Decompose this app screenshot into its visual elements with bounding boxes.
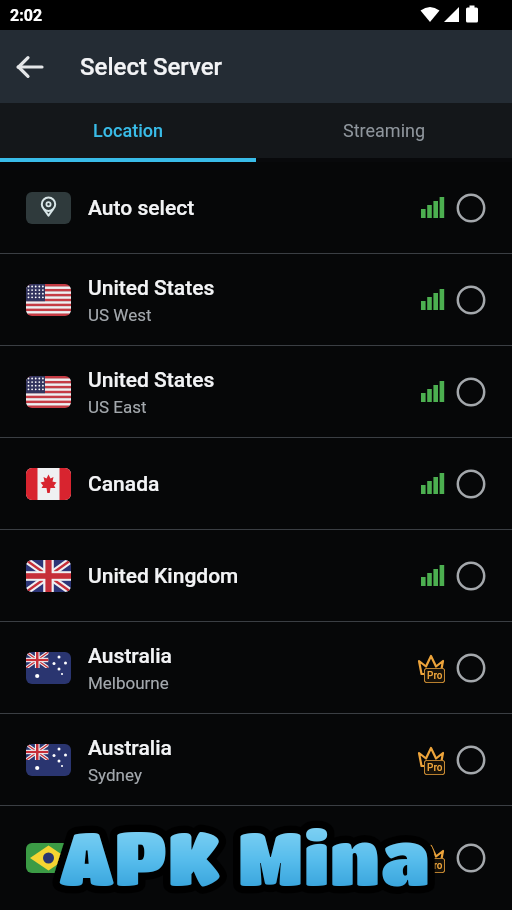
button[interactable]: Pro bbox=[0, 806, 512, 910]
button[interactable]: Australia bbox=[0, 714, 512, 806]
staticText: Streaming bbox=[343, 120, 426, 141]
staticText: United States bbox=[88, 276, 215, 301]
staticText: Australia bbox=[88, 644, 172, 669]
staticText: APK Mina bbox=[59, 813, 431, 899]
button[interactable]: United States bbox=[0, 346, 512, 438]
staticText: United Kingdom bbox=[88, 564, 239, 589]
staticText: Pro bbox=[427, 860, 443, 872]
button[interactable] bbox=[0, 30, 60, 103]
staticText: Sydney bbox=[88, 765, 142, 785]
staticText: APK Mina bbox=[59, 813, 431, 899]
button[interactable]: Australia bbox=[0, 622, 512, 714]
staticText: United States bbox=[88, 368, 215, 393]
staticText: 2:02 bbox=[10, 6, 43, 25]
staticText: Canada bbox=[88, 472, 160, 497]
staticText: US West bbox=[88, 305, 152, 325]
staticText: US East bbox=[88, 397, 147, 417]
button[interactable]: Canada bbox=[0, 438, 512, 530]
button[interactable]: Location bbox=[0, 103, 256, 158]
staticText: Pro bbox=[427, 762, 443, 774]
button[interactable]: United States bbox=[0, 254, 512, 346]
button[interactable]: Streaming bbox=[256, 103, 512, 158]
staticText: Auto select bbox=[88, 196, 195, 221]
staticText: Australia bbox=[88, 736, 172, 761]
staticText: Location bbox=[93, 120, 164, 141]
button[interactable]: Auto select bbox=[0, 162, 512, 254]
staticText: Pro bbox=[427, 670, 443, 682]
button[interactable]: United Kingdom bbox=[0, 530, 512, 622]
staticText: Select Server bbox=[80, 53, 223, 81]
staticText: Melbourne bbox=[88, 673, 169, 693]
